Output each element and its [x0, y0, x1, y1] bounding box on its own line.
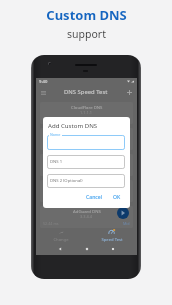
staticText: Cancel — [86, 194, 103, 201]
staticText: Add Custom DNS — [48, 121, 98, 129]
button[interactable]: OK — [111, 193, 123, 202]
staticText: DNS 2 (Optional) — [50, 178, 83, 184]
button[interactable]: OpenDNS — [40, 180, 133, 202]
staticText: Low — [123, 143, 130, 148]
staticText: DNS 1 — [50, 159, 63, 165]
staticText: 52.44 ms — [43, 221, 59, 226]
button[interactable]: AdGuard DNS — [40, 206, 133, 228]
staticText: Change — [53, 237, 69, 243]
staticText: Mid — [123, 221, 130, 226]
staticText: 34.52 ms — [43, 143, 59, 148]
staticText: AdGuard DNS — [73, 208, 101, 214]
staticText: Low — [123, 117, 130, 122]
button[interactable]: Run speed test — [117, 207, 129, 219]
staticText: 3.3.4.4 — [80, 214, 93, 219]
button[interactable]: Google DNS — [40, 128, 133, 150]
button[interactable]: Quad9 DNS — [40, 154, 133, 176]
staticText: Custom DNS — [46, 6, 127, 24]
staticText: support — [67, 27, 106, 41]
staticText: Name — [50, 132, 61, 137]
staticText: DNS Speed Test — [64, 88, 108, 96]
staticText: 1.1.1.1 — [80, 110, 93, 115]
staticText: 21.48 ms — [43, 117, 59, 122]
staticText: Speed Test — [101, 237, 123, 243]
button[interactable]: Cancel — [84, 193, 105, 202]
staticText: CloudFlare DNS — [71, 104, 103, 110]
button[interactable]: Speed Test — [86, 227, 137, 245]
button[interactable]: CloudFlare DNS — [40, 102, 133, 124]
button[interactable]: Open navigation menu — [39, 88, 48, 97]
staticText: OK — [113, 194, 121, 201]
button[interactable] — [47, 135, 125, 150]
staticText: 9:40 — [39, 79, 48, 85]
button[interactable]: DNS 1 — [47, 155, 125, 169]
staticText: OpenDNS — [77, 182, 97, 188]
staticText: Google DNS — [74, 130, 99, 136]
button[interactable]: Add custom DNS — [125, 88, 134, 97]
button[interactable]: DNS 2 (Optional) — [47, 174, 125, 188]
